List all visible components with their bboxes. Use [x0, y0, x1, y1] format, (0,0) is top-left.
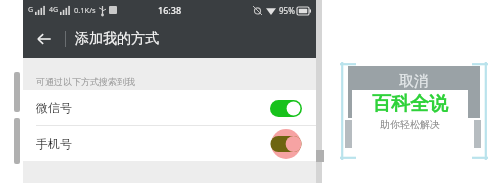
staticText: 0.1K/s	[74, 5, 96, 15]
staticText: G	[28, 5, 34, 15]
staticText: 可通过以下方式搜索到我	[36, 76, 135, 87]
staticText: 取消	[399, 72, 429, 91]
button[interactable]: Toggle on	[266, 93, 306, 123]
staticText: 手机号	[36, 136, 72, 151]
staticText: 95%	[279, 5, 295, 16]
staticText: 4G	[49, 5, 59, 15]
button[interactable]: 手机号	[23, 126, 316, 161]
staticText: 百科全说	[372, 92, 448, 116]
button[interactable]: 微信号	[23, 90, 316, 125]
button[interactable]: 取消	[348, 66, 480, 118]
staticText: 微信号	[36, 100, 72, 115]
staticText: 16:38	[158, 4, 182, 16]
button[interactable]: Back	[29, 24, 59, 54]
staticText: 助你轻松解决	[380, 118, 440, 131]
button[interactable]: Toggle off	[266, 129, 306, 159]
staticText: 添加我的方式	[75, 30, 159, 48]
